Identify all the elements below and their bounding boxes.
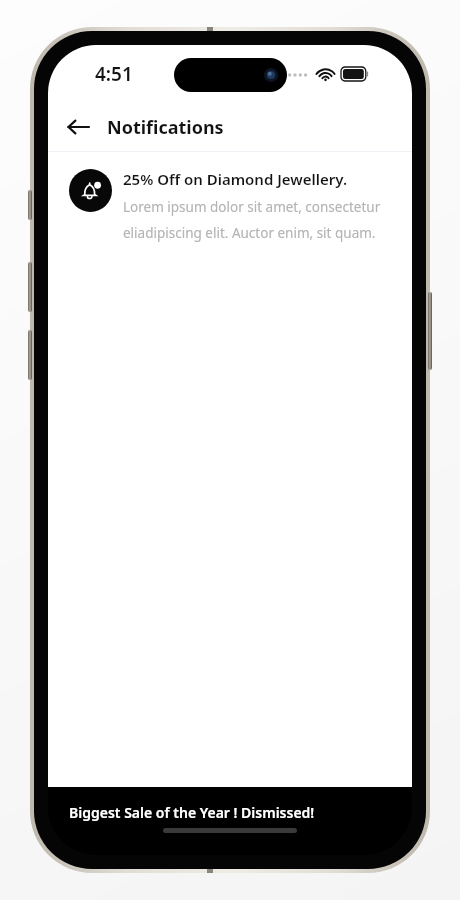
button[interactable]: 25% Off on Diamond Jewellery. xyxy=(48,152,412,256)
button[interactable]: Biggest Sale of the Year ! Dismissed! xyxy=(48,787,412,855)
staticText: 25% Off on Diamond Jewellery. xyxy=(123,169,348,189)
staticText: Biggest Sale of the Year ! Dismissed! xyxy=(69,803,315,822)
button[interactable]: Back xyxy=(58,107,98,147)
staticText: 4:51 xyxy=(95,61,133,87)
staticText: Lorem ipsum dolor sit amet, consectetur … xyxy=(123,198,392,242)
staticText: Notifications xyxy=(107,115,224,140)
